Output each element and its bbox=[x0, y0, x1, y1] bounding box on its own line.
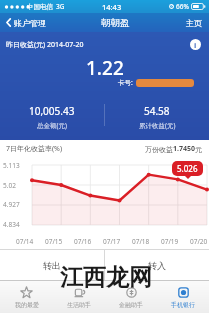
staticText: 账户管理 bbox=[14, 18, 46, 28]
staticText: 累计收益(元) bbox=[139, 121, 176, 130]
staticText: 主页 bbox=[186, 18, 202, 28]
button[interactable]: 生活助手 bbox=[53, 281, 105, 313]
button[interactable]: 说明 bbox=[190, 39, 201, 50]
staticText: 07/14 bbox=[16, 237, 34, 246]
button[interactable]: 金融助手 bbox=[105, 281, 157, 313]
staticText: 江西龙网 bbox=[60, 263, 152, 292]
staticText: 1.22 bbox=[86, 55, 124, 81]
staticText: 07/16 bbox=[74, 237, 92, 246]
button[interactable]: 转入 bbox=[105, 250, 209, 280]
staticText: 中国电信 bbox=[27, 3, 53, 11]
staticText: 转出 bbox=[43, 260, 61, 271]
staticText: 07/15 bbox=[45, 237, 63, 246]
staticText: 金融助手 bbox=[119, 301, 143, 309]
staticText: 4.927 bbox=[3, 200, 20, 209]
staticText: 5.02 bbox=[3, 181, 16, 190]
staticText: i bbox=[194, 40, 197, 50]
button[interactable]: 主页 bbox=[179, 13, 209, 32]
staticText: 10,005.43 bbox=[29, 104, 75, 118]
staticText: 07/17 bbox=[103, 237, 121, 246]
button[interactable]: 转出 bbox=[0, 250, 104, 280]
staticText: 3G bbox=[56, 2, 65, 11]
staticText: 朝朝盈 bbox=[101, 17, 130, 29]
staticText: 5.113 bbox=[3, 161, 20, 170]
staticText: 卡号: bbox=[118, 78, 133, 87]
staticText: 昨日收益(元) 2014-07-20 bbox=[6, 40, 84, 50]
staticText: 54.58 bbox=[144, 104, 170, 118]
staticText: 总金额(元) bbox=[37, 121, 67, 130]
staticText: 07/19 bbox=[161, 237, 179, 246]
staticText: 元 bbox=[195, 145, 202, 154]
button[interactable]: 手机银行 bbox=[157, 281, 209, 313]
staticText: 万份收益 bbox=[145, 145, 173, 154]
staticText: 我的最爱 bbox=[15, 301, 39, 309]
staticText: 生活助手 bbox=[67, 301, 91, 309]
staticText: 转入 bbox=[148, 260, 166, 271]
staticText: 07/18 bbox=[132, 237, 150, 246]
staticText: 14:43 bbox=[102, 2, 122, 12]
staticText: 4.834 bbox=[3, 220, 20, 229]
staticText: 7日年化收益率(%) bbox=[6, 144, 63, 154]
button[interactable]: 我的最爱 bbox=[0, 281, 53, 313]
staticText: 1.7450 bbox=[173, 144, 195, 154]
button[interactable]: 账户管理 bbox=[0, 13, 52, 32]
staticText: 5.026 bbox=[177, 163, 198, 174]
staticText: 07/20 bbox=[190, 237, 208, 246]
staticText: 66% bbox=[176, 2, 189, 11]
staticText: 手机银行 bbox=[171, 301, 195, 309]
